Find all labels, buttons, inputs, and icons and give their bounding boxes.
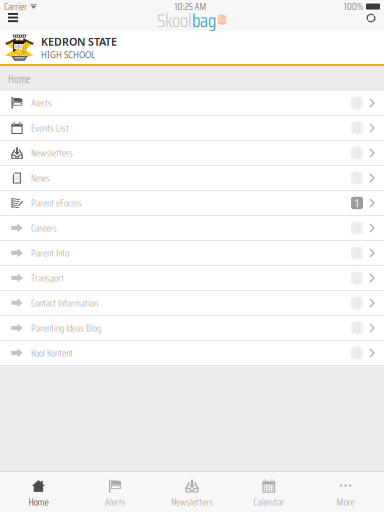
staticText: 0: [354, 346, 360, 360]
button[interactable]: Careers: [0, 216, 384, 241]
staticText: 0: [354, 321, 360, 335]
staticText: 0: [354, 246, 360, 260]
staticText: Carrier: [4, 0, 27, 14]
button[interactable]: More: [307, 472, 384, 512]
staticText: Home: [28, 494, 48, 510]
staticText: 0: [354, 121, 360, 135]
staticText: Transport: [31, 270, 64, 286]
staticText: Home: [8, 71, 31, 88]
button[interactable]: Alerts: [0, 91, 384, 116]
staticText: Newsletters: [31, 145, 73, 161]
staticText: Contact Information: [31, 295, 98, 311]
staticText: 0: [354, 146, 360, 160]
button[interactable]: Kool Kontent: [0, 341, 384, 366]
button[interactable]: Transport: [0, 266, 384, 291]
staticText: KEDRON STATE: [41, 35, 117, 49]
button[interactable]: Newsletters: [154, 472, 230, 512]
staticText: Alerts: [31, 95, 52, 111]
button[interactable]: Newsletters: [0, 141, 384, 166]
button[interactable]: Alerts: [77, 472, 154, 512]
staticText: 0: [354, 171, 360, 185]
button[interactable]: Contact Information: [0, 291, 384, 316]
button[interactable]: Events List: [0, 116, 384, 141]
staticText: Careers: [31, 220, 57, 236]
staticText: HIGH SCHOOL: [41, 50, 95, 60]
staticText: Events List: [31, 120, 69, 136]
staticText: Parenting Ideas Blog: [31, 320, 101, 336]
staticText: 1: [354, 196, 360, 210]
staticText: Parent Info: [31, 245, 69, 261]
staticText: Calendar: [253, 494, 284, 510]
button[interactable]: Refresh: [359, 13, 383, 31]
staticText: 0: [354, 296, 360, 310]
staticText: 0: [354, 96, 360, 110]
button[interactable]: Parent Info: [0, 241, 384, 266]
button[interactable]: News: [0, 166, 384, 191]
button[interactable]: Menu: [1, 13, 25, 31]
button[interactable]: Parenting Ideas Blog: [0, 316, 384, 341]
staticText: Kool Kontent: [31, 345, 73, 361]
staticText: Alerts: [105, 494, 126, 510]
staticText: bag: [192, 6, 216, 35]
staticText: Newsletters: [171, 494, 213, 510]
staticText: 0: [354, 271, 360, 285]
staticText: 10:25 AM: [174, 0, 206, 14]
button[interactable]: Calendar: [230, 472, 307, 512]
button[interactable]: Parent eForms: [0, 191, 384, 216]
staticText: Skool: [157, 6, 192, 35]
staticText: 100%: [344, 0, 363, 14]
staticText: 0: [354, 221, 360, 235]
button[interactable]: Home: [0, 472, 77, 512]
staticText: Parent eForms: [31, 195, 82, 211]
staticText: More: [337, 494, 355, 510]
staticText: News: [31, 170, 50, 186]
